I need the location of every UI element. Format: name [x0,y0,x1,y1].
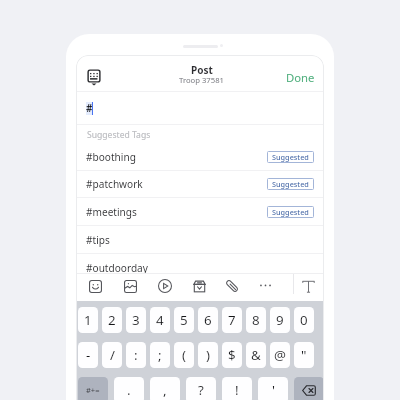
button[interactable]: & [246,342,266,368]
button[interactable]: @ [270,342,290,368]
staticText: 8 [252,311,260,329]
button[interactable]: " [294,342,314,368]
staticText: Suggested [272,207,309,217]
button[interactable]: . [114,377,144,400]
staticText: #boothing [86,150,136,164]
staticText: Post [191,63,213,77]
button[interactable]: More [255,276,275,296]
staticText: 9 [276,311,284,329]
staticText: Done [286,70,315,85]
staticText: 1 [84,311,92,329]
staticText: 3 [132,311,140,329]
button[interactable]: #+= [78,377,108,400]
button[interactable]: Done [277,66,324,89]
staticText: ; [158,346,162,364]
staticText: #outdoorday [86,261,148,275]
staticText: 6 [204,311,212,329]
staticText: ? [198,381,204,399]
button[interactable]: : [126,342,146,368]
button[interactable]: Poll [189,276,209,296]
button[interactable]: Emoji [85,276,105,296]
button[interactable]: ' [258,377,288,400]
staticText: 4 [156,311,164,329]
button[interactable]: - [78,342,98,368]
staticText: / [110,346,115,364]
button[interactable]: / [102,342,122,368]
button[interactable]: #boothing [76,144,324,170]
staticText: 0 [300,311,308,329]
button[interactable]: Photo [120,276,140,296]
staticText: ! [235,381,239,399]
staticText: Suggested Tags [87,129,151,141]
button[interactable]: 3 [126,307,146,333]
button[interactable]: Attach [222,276,242,296]
staticText: #meetings [86,205,137,219]
staticText: #patchwork [86,177,143,191]
staticText: : [134,346,138,364]
staticText: 5 [180,311,188,329]
button[interactable]: 0 [294,307,314,333]
button[interactable]: 4 [150,307,170,333]
staticText: Suggested [272,179,309,189]
button[interactable]: Video [155,276,175,296]
staticText: ) [206,346,210,364]
button[interactable]: ; [150,342,170,368]
button[interactable]: ( [174,342,194,368]
button[interactable]: #meetings [76,198,324,225]
staticText: - [86,346,91,364]
staticText: " [301,346,307,364]
staticText: Troop 37581 [179,75,224,85]
button[interactable]: #patchwork [76,171,324,197]
button[interactable]: 1 [78,307,98,333]
button[interactable]: ? [186,377,216,400]
button[interactable]: 7 [222,307,242,333]
staticText: $ [228,346,236,364]
staticText: @ [274,346,286,364]
button[interactable]: 8 [246,307,266,333]
staticText: 7 [228,311,236,329]
button[interactable]: #tips [76,226,324,253]
staticText: 2 [108,311,116,329]
button[interactable]: Backspace [294,377,324,400]
button[interactable]: 5 [174,307,194,333]
staticText: #+= [86,385,100,395]
button[interactable]: #outdoorday [76,254,324,281]
staticText: #tips [86,233,110,247]
button[interactable]: 9 [270,307,290,333]
staticText: , [163,381,167,399]
button[interactable]: $ [222,342,242,368]
staticText: ' [272,381,275,399]
staticText: . [127,381,131,399]
button[interactable]: ! [222,377,252,400]
staticText: Suggested [272,152,309,162]
button[interactable]: ) [198,342,218,368]
button[interactable]: , [150,377,180,400]
staticText: ( [182,346,186,364]
button[interactable]: # [76,92,324,124]
button[interactable]: 6 [198,307,218,333]
button[interactable]: Hide keyboard [83,65,105,87]
button[interactable]: 2 [102,307,122,333]
staticText: # [86,101,93,115]
staticText: & [251,346,261,364]
button[interactable]: Text formatting [297,275,319,297]
